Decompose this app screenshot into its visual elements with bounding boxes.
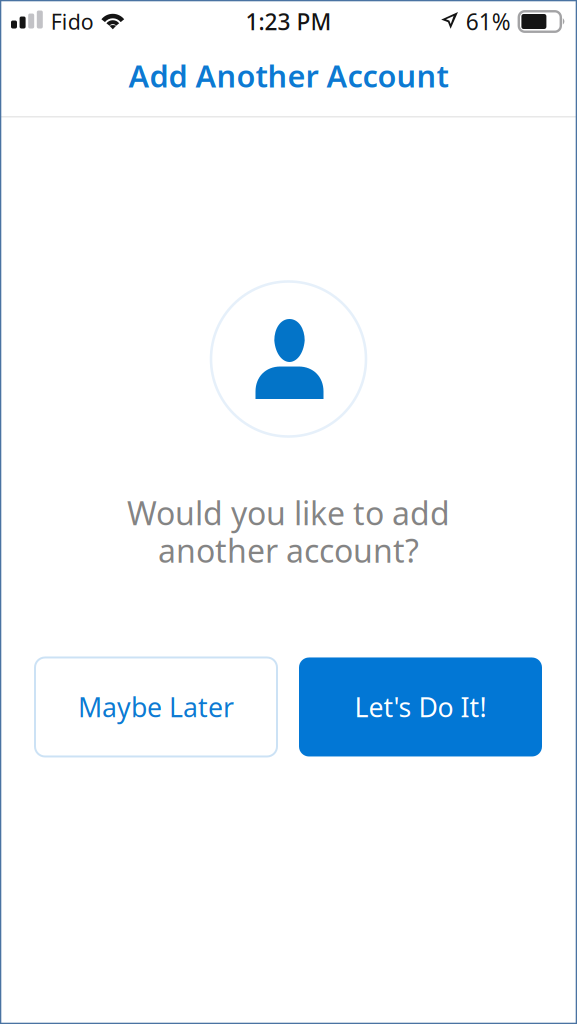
button[interactable]: Maybe Later — [35, 657, 277, 756]
staticText: 61% — [466, 6, 511, 36]
staticText: Fido — [51, 7, 94, 36]
staticText: Maybe Later — [78, 689, 234, 725]
staticText: 1:23 PM — [245, 6, 331, 36]
staticText: Would you like to add — [127, 491, 450, 534]
button[interactable]: Let's Do It! — [299, 657, 542, 756]
staticText: Let's Do It! — [354, 689, 486, 725]
staticText: another account? — [158, 529, 419, 571]
staticText: Add Another Account — [128, 55, 448, 96]
